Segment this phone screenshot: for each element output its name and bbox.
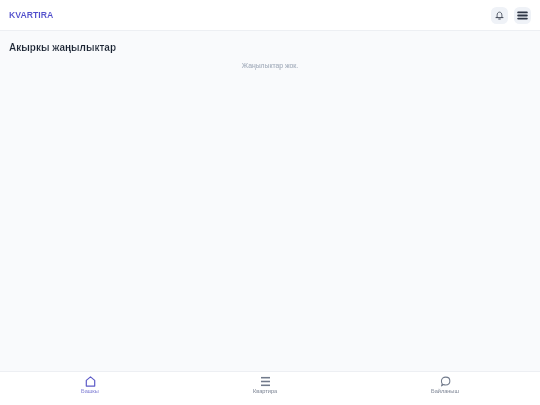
button[interactable]: Квартира: [180, 371, 350, 405]
button[interactable]: Menu: [514, 7, 531, 24]
staticText: Акыркы жаңылыктар: [9, 42, 117, 53]
button[interactable]: Башкы: [0, 371, 180, 405]
staticText: Квартира: [253, 388, 278, 394]
button[interactable]: Байланыш: [350, 371, 540, 405]
button[interactable]: Notifications: [491, 7, 508, 24]
staticText: Байланыш: [431, 388, 459, 394]
staticText: KVARTIRA: [9, 10, 54, 20]
button[interactable]: KVARTIRA: [9, 10, 54, 21]
staticText: Жаңылыктар жок.: [0, 62, 540, 70]
staticText: Башкы: [81, 388, 99, 394]
